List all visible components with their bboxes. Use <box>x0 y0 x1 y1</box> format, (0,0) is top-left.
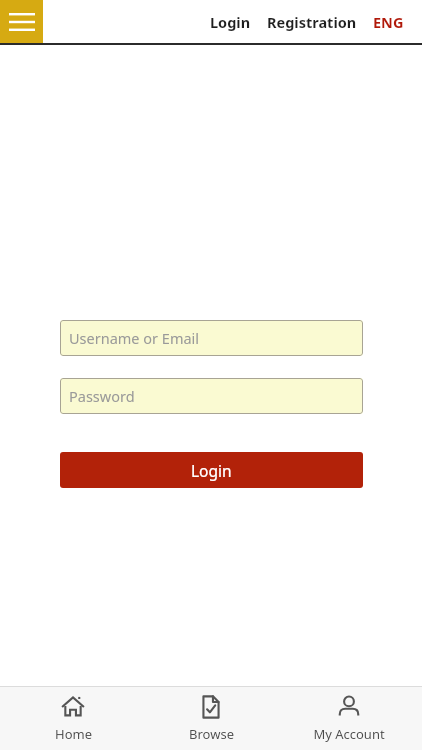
staticText: Registration <box>267 12 357 32</box>
staticText: Home <box>55 725 92 743</box>
button[interactable]: Username or Email <box>60 320 363 356</box>
button[interactable]: Home <box>8 689 138 747</box>
button[interactable]: Login <box>60 452 363 488</box>
button[interactable]: Password <box>60 378 363 414</box>
staticText: Login <box>191 460 232 481</box>
button[interactable]: Browse <box>146 689 276 747</box>
staticText: Username or Email <box>69 328 200 348</box>
button[interactable]: Open navigation menu <box>0 0 43 43</box>
button[interactable]: Registration <box>261 6 363 38</box>
button[interactable]: My Account <box>284 689 414 747</box>
staticText: Password <box>69 386 135 406</box>
button[interactable]: ENG <box>367 6 410 38</box>
staticText: My Account <box>313 725 385 743</box>
staticText: Browse <box>189 725 234 743</box>
staticText: ENG <box>373 12 404 32</box>
staticText: Login <box>210 12 251 32</box>
button[interactable]: Login <box>204 6 257 38</box>
